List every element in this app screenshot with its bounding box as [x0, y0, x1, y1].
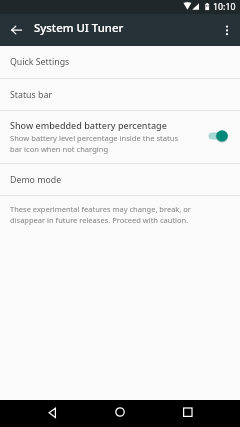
staticText: System UI Tuner [34, 20, 124, 36]
button[interactable]: Status bar [0, 79, 240, 110]
button[interactable]: Recent apps [170, 400, 206, 427]
button[interactable]: Back [35, 400, 71, 427]
staticText: These experimental features may change, … [10, 204, 216, 225]
button[interactable]: Quick Settings [0, 46, 240, 78]
staticText: Show embedded battery percentage [10, 119, 167, 131]
staticText: Demo mode [10, 174, 62, 186]
button[interactable]: Show embedded battery percentage [0, 111, 240, 163]
button[interactable]: More options [214, 14, 240, 46]
button[interactable]: Demo mode [0, 164, 240, 195]
staticText: Quick Settings [10, 56, 70, 68]
button[interactable]: Home [102, 400, 138, 427]
staticText: Show battery level percentage inside the… [10, 133, 184, 154]
staticText: Status bar [10, 89, 53, 101]
button[interactable]: Navigate up [0, 14, 28, 46]
staticText: 10:10 [213, 1, 236, 13]
